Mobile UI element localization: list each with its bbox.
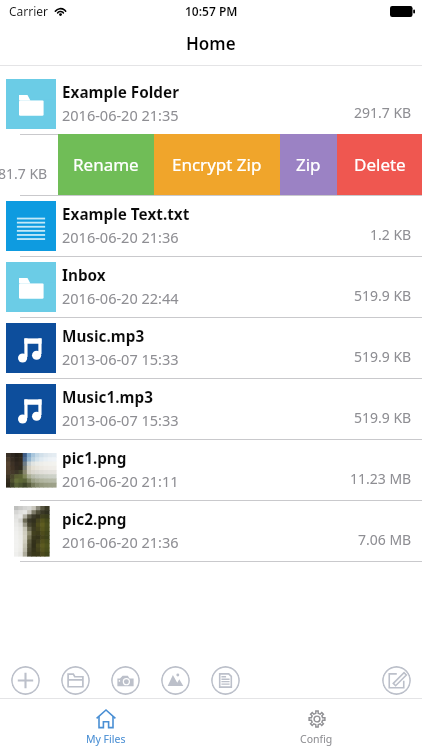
button[interactable]: pic2.png xyxy=(0,500,422,561)
staticText: 2013-06-07 15:33 xyxy=(62,349,179,369)
button[interactable]: Example Folder xyxy=(0,73,422,134)
button[interactable]: Config xyxy=(211,699,422,750)
button[interactable]: Photos xyxy=(161,666,190,695)
staticText: Rename xyxy=(73,153,139,176)
staticText: Encrypt Zip xyxy=(172,153,262,176)
staticText: 519.9 KB xyxy=(354,286,412,305)
staticText: 2016-06-20 22:44 xyxy=(62,288,179,308)
staticText: 10:57 PM xyxy=(185,3,238,19)
button[interactable]: Music.mp3 xyxy=(0,317,422,378)
staticText: 2016-06-20 21:36 xyxy=(62,532,179,552)
staticText: Music1.mp3 xyxy=(62,387,153,408)
button[interactable]: New folder xyxy=(61,666,90,695)
button[interactable]: Music1.mp3 xyxy=(0,378,422,439)
staticText: Music.mp3 xyxy=(62,326,145,347)
button[interactable]: Delete xyxy=(337,134,422,195)
button[interactable]: Add xyxy=(11,666,40,695)
staticText: pic2.png xyxy=(62,509,127,530)
staticText: Delete xyxy=(354,153,406,176)
staticText: 291.7 KB xyxy=(354,103,412,122)
button[interactable]: Documents xyxy=(211,666,240,695)
staticText: 11.23 MB xyxy=(350,469,412,488)
staticText: Home xyxy=(186,32,236,55)
staticText: Example Folder xyxy=(62,82,179,103)
staticText: My Files xyxy=(86,732,126,746)
staticText: 519.9 KB xyxy=(354,347,412,366)
staticText: Example Text.txt xyxy=(62,204,190,225)
staticText: Carrier xyxy=(9,3,49,19)
button[interactable]: Inbox xyxy=(0,256,422,317)
staticText: 1.2 KB xyxy=(370,225,412,244)
button[interactable]: My Files xyxy=(0,699,211,750)
button[interactable]: Encrypt Zip xyxy=(154,134,280,195)
button[interactable]: Example Zip.zip xyxy=(0,134,58,195)
button[interactable]: Zip xyxy=(280,134,337,195)
staticText: pic1.png xyxy=(62,448,127,469)
staticText: 7.06 MB xyxy=(358,530,412,549)
button[interactable]: pic1.png xyxy=(0,439,422,500)
staticText: 519.9 KB xyxy=(354,408,412,427)
staticText: 2016-06-20 21:36 xyxy=(62,227,179,247)
button[interactable]: Example Text.txt xyxy=(0,195,422,256)
staticText: Inbox xyxy=(62,265,106,286)
staticText: Zip xyxy=(296,153,321,176)
button[interactable]: Edit xyxy=(382,666,411,695)
staticText: 2016-06-20 21:35 xyxy=(62,105,179,125)
staticText: 2016-06-20 21:11 xyxy=(62,471,179,491)
staticText: Config xyxy=(300,732,333,746)
staticText: 2013-06-07 15:33 xyxy=(62,410,179,430)
button[interactable]: Rename xyxy=(58,134,154,195)
button[interactable]: Camera xyxy=(111,666,140,695)
staticText: 381.7 KB xyxy=(0,164,48,183)
